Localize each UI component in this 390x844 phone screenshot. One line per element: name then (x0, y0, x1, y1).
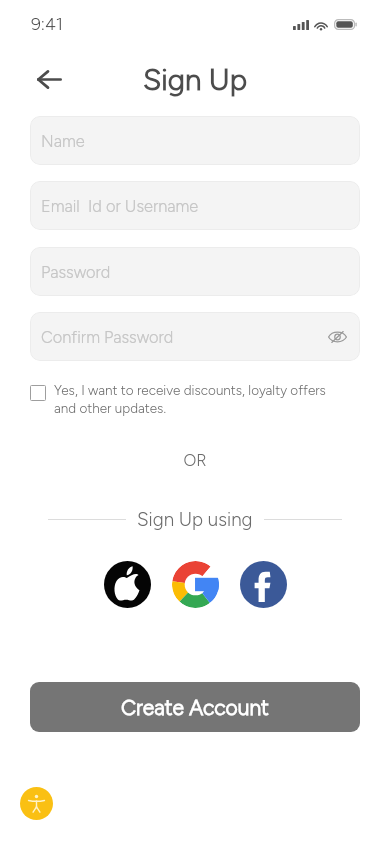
button[interactable]: Sign up with Google (172, 561, 219, 608)
button[interactable]: Create Account (30, 682, 360, 732)
button[interactable]: Email Id or Username (30, 181, 360, 230)
button[interactable]: Back (30, 60, 68, 98)
staticText: 9:41 (31, 13, 64, 34)
staticText: Sign Up using (137, 508, 253, 530)
staticText: Yes, I want to receive discounts, loyalt… (54, 382, 326, 416)
button[interactable]: Yes, I want to receive discounts, loyalt… (30, 382, 330, 416)
staticText: Create Account (121, 695, 269, 720)
staticText: Email Id or Username (41, 196, 199, 216)
button[interactable]: Confirm Password (30, 312, 360, 361)
staticText: OR (0, 450, 390, 470)
button[interactable]: Accessibility options (20, 787, 53, 820)
button[interactable]: Show password (325, 325, 349, 349)
staticText: Sign Up (143, 62, 248, 98)
staticText: Password (41, 262, 111, 282)
button[interactable]: Password (30, 247, 360, 296)
staticText: Confirm Password (41, 327, 174, 347)
button[interactable]: Sign up with Apple (104, 561, 151, 608)
staticText: Name (41, 131, 85, 151)
button[interactable]: Name (30, 116, 360, 165)
button[interactable]: Sign up with Facebook (240, 561, 287, 608)
